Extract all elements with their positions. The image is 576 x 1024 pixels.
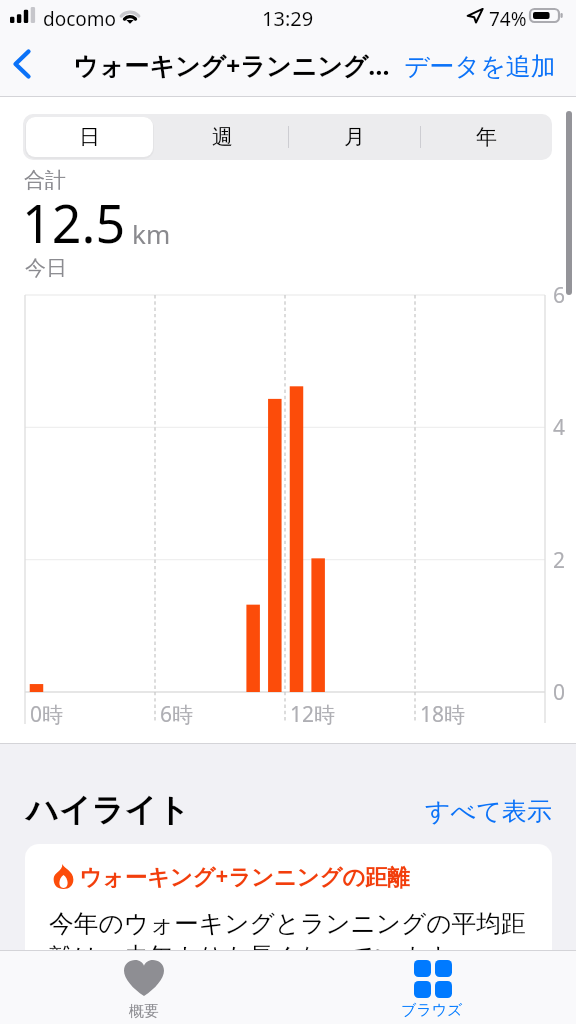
button[interactable]: 概要: [0, 950, 288, 1024]
staticText: 概要: [129, 1002, 159, 1021]
staticText: 週: [212, 124, 233, 150]
staticText: 13:29: [262, 5, 314, 32]
button[interactable]: 日: [23, 114, 156, 160]
staticText: 0: [553, 678, 566, 707]
button[interactable]: ブラウズ: [288, 950, 576, 1024]
staticText: ハイライト: [26, 790, 190, 830]
staticText: 今日: [25, 255, 67, 281]
staticText: 18時: [420, 700, 466, 729]
staticText: 12.5: [22, 187, 126, 258]
staticText: 6時: [160, 700, 194, 729]
staticText: km: [132, 216, 171, 251]
staticText: 合計: [24, 167, 66, 193]
staticText: 0時: [30, 700, 64, 729]
staticText: 74%: [489, 6, 527, 32]
staticText: ウォーキング+ランニング…: [73, 48, 390, 82]
staticText: 2: [553, 546, 566, 575]
staticText: docomo: [43, 6, 117, 32]
button[interactable]: 週: [156, 114, 288, 160]
button[interactable]: 年: [420, 114, 552, 160]
staticText: 12時: [290, 700, 336, 729]
staticText: データを追加: [404, 51, 556, 82]
staticText: ブラウズ: [401, 1001, 463, 1020]
button[interactable]: 月: [288, 114, 420, 160]
button[interactable]: ウォーキング+ランニングの距離: [25, 844, 552, 984]
staticText: ウォーキング+ランニングの距離: [79, 861, 410, 891]
button[interactable]: すべて表示: [425, 796, 552, 827]
button[interactable]: データを追加: [404, 38, 556, 94]
staticText: すべて表示: [425, 796, 552, 827]
staticText: 月: [344, 124, 365, 150]
button[interactable]: Back: [0, 40, 46, 96]
staticText: 年: [476, 124, 497, 150]
staticText: 今年のウォーキングとランニングの平均距離は、去年よりも長くなっています。: [49, 908, 529, 973]
staticText: 日: [79, 124, 100, 150]
staticText: 6: [553, 281, 566, 310]
staticText: 4: [553, 413, 566, 442]
